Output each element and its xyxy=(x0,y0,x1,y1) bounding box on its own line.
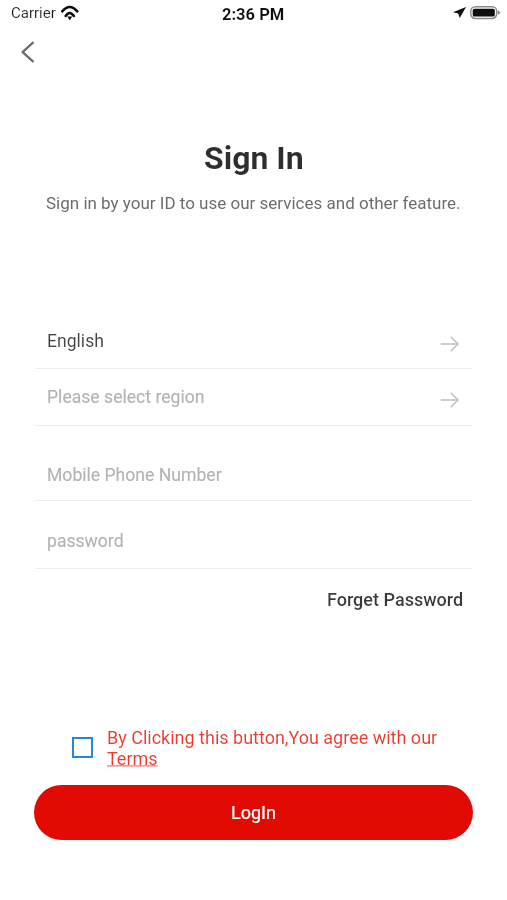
button[interactable]: password xyxy=(35,522,472,568)
button[interactable]: Please select region xyxy=(35,379,472,425)
button[interactable]: Mobile Phone Number xyxy=(35,454,472,500)
staticText: Mobile Phone Number xyxy=(47,465,222,486)
staticText: Forget Password xyxy=(327,589,464,610)
staticText: password xyxy=(47,531,124,552)
staticText: 2:36 PM xyxy=(222,5,285,24)
staticText: By Clicking this button,You agree with o… xyxy=(107,727,438,748)
button[interactable]: Agree to terms checkbox xyxy=(72,737,93,758)
button[interactable]: Forget Password xyxy=(319,583,472,616)
button[interactable]: English xyxy=(35,322,472,368)
button[interactable]: LogIn xyxy=(34,785,473,840)
staticText: Sign in by your ID to use our services a… xyxy=(46,193,461,213)
staticText: Please select region xyxy=(47,387,205,408)
staticText: English xyxy=(47,331,104,352)
staticText: Sign In xyxy=(204,139,304,177)
staticText: Carrier xyxy=(11,4,56,22)
button[interactable]: Terms xyxy=(107,748,158,769)
staticText: LogIn xyxy=(231,802,276,823)
button[interactable]: Back xyxy=(5,30,50,75)
